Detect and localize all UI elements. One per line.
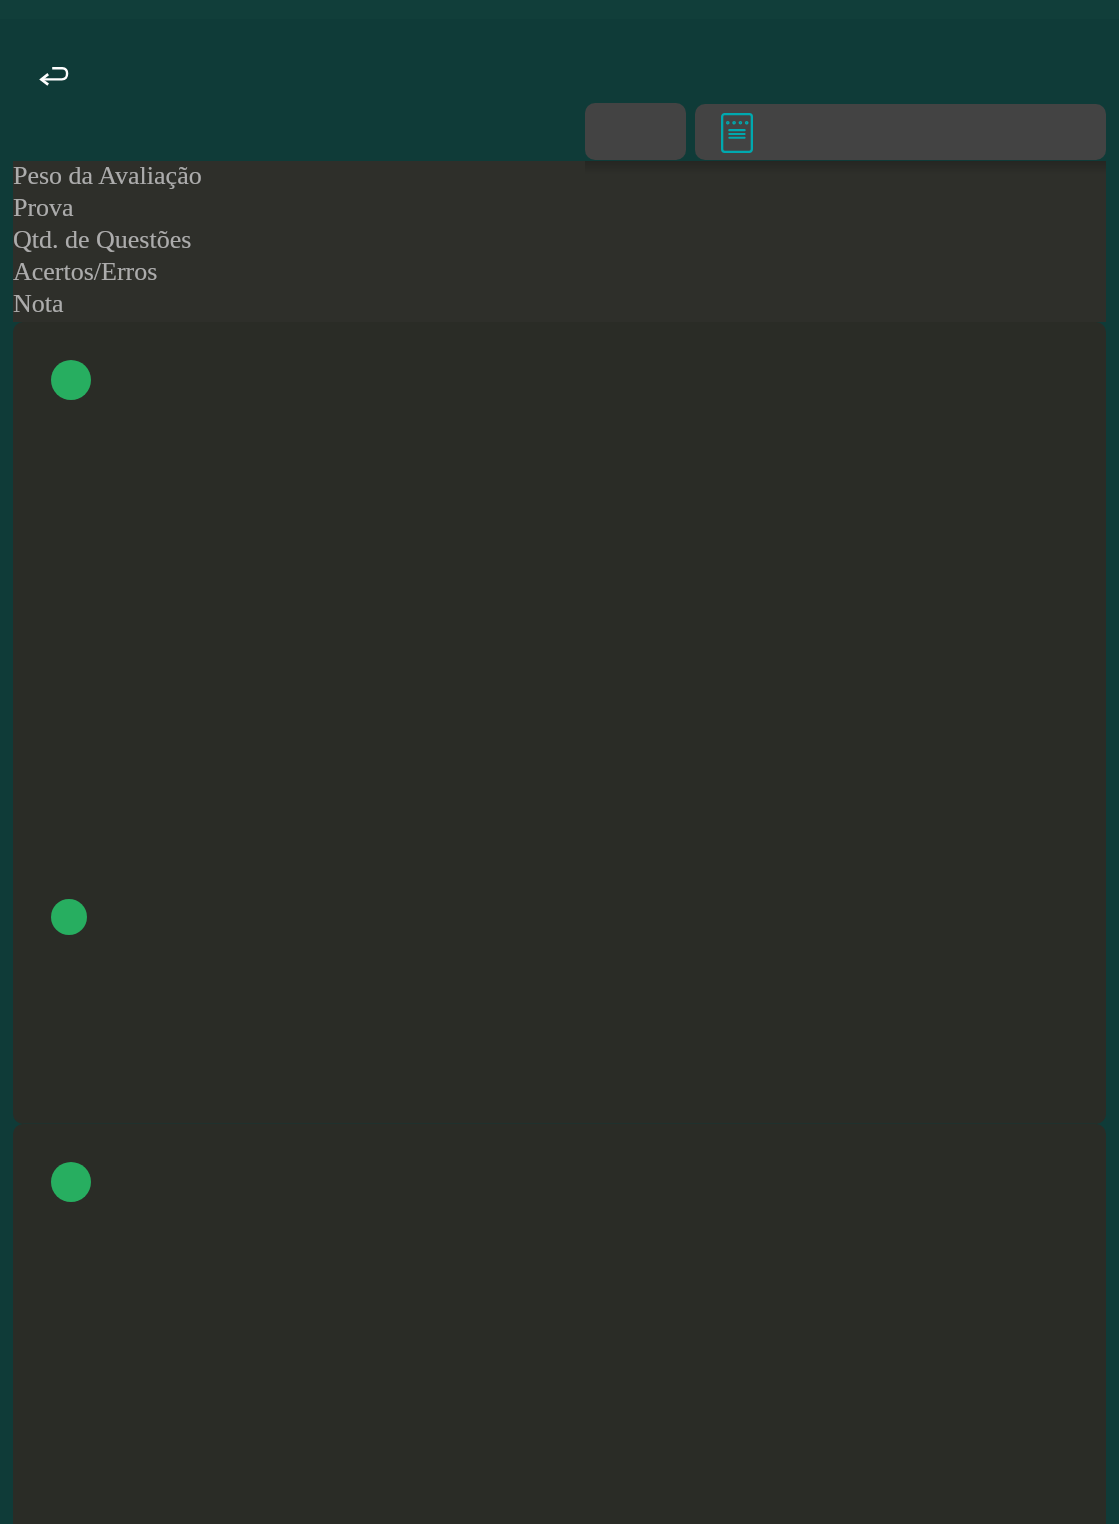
staticText: Qtd. de Questões — [13, 225, 192, 254]
staticText: Nota — [13, 289, 64, 318]
staticText: Peso da Avaliação — [13, 161, 202, 190]
button[interactable]: Filtro — [585, 103, 686, 160]
button[interactable]: Avaliação 2 — [13, 1124, 1106, 1524]
staticText: Prova — [13, 193, 74, 222]
button[interactable]: Voltar — [22, 50, 80, 108]
staticText: Acertos/Erros — [13, 257, 158, 286]
button[interactable]: Avaliação 1 — [13, 322, 1106, 1124]
button[interactable]: Prova — [695, 104, 1106, 160]
